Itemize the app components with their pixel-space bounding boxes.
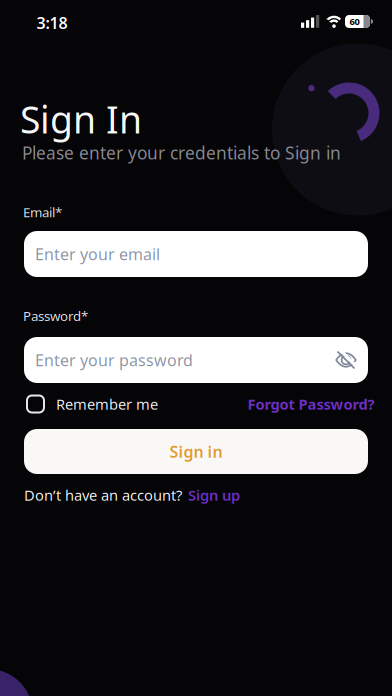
staticText: Remember me	[56, 394, 158, 414]
button[interactable]: Remember me	[26, 394, 158, 414]
staticText: Enter your password	[35, 349, 193, 371]
staticText: Don’t have an account?	[24, 485, 182, 505]
staticText: 3:18	[36, 12, 67, 33]
button[interactable]: Sign up	[188, 485, 240, 505]
staticText: Sign in	[169, 441, 222, 462]
staticText: Please enter your credentials to Sign in	[22, 141, 341, 164]
staticText: 60	[349, 15, 359, 28]
staticText: Email*	[23, 203, 62, 221]
button[interactable]: Forgot Password?	[247, 394, 374, 414]
staticText: Password*	[23, 307, 88, 325]
staticText: Enter your email	[35, 243, 160, 265]
staticText: Forgot Password?	[247, 394, 374, 414]
button[interactable]: Sign in	[24, 429, 368, 474]
staticText: Sign In	[20, 94, 142, 144]
button[interactable]: Show password	[335, 350, 368, 370]
staticText: Sign up	[188, 485, 240, 505]
